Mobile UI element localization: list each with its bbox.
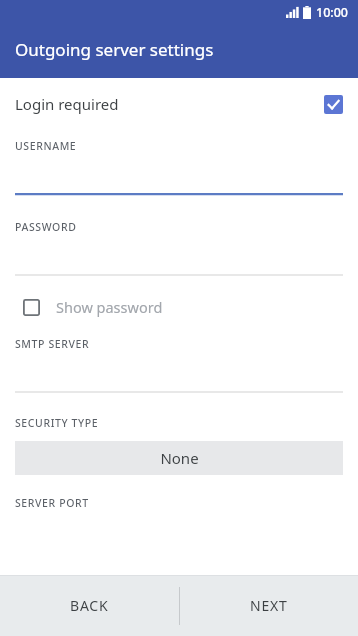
staticText: Show password	[56, 297, 163, 317]
staticText: USERNAME	[15, 139, 77, 153]
staticText: 10:00	[316, 4, 349, 21]
staticText: NEXT	[250, 596, 288, 615]
staticText: BACK	[70, 596, 109, 615]
button[interactable]: Show password	[15, 289, 343, 325]
staticText: SECURITY TYPE	[15, 416, 99, 430]
staticText: PASSWORD	[15, 220, 77, 234]
staticText: Login required	[15, 94, 119, 114]
staticText: None	[160, 448, 199, 468]
staticText: SMTP SERVER	[15, 337, 90, 351]
button[interactable]: NEXT	[179, 575, 358, 636]
button[interactable]: None	[15, 441, 343, 475]
staticText: SERVER PORT	[15, 496, 89, 510]
button[interactable]: BACK	[0, 575, 179, 636]
button[interactable]: Login required	[15, 78, 343, 130]
staticText: Outgoing server settings	[15, 38, 214, 61]
